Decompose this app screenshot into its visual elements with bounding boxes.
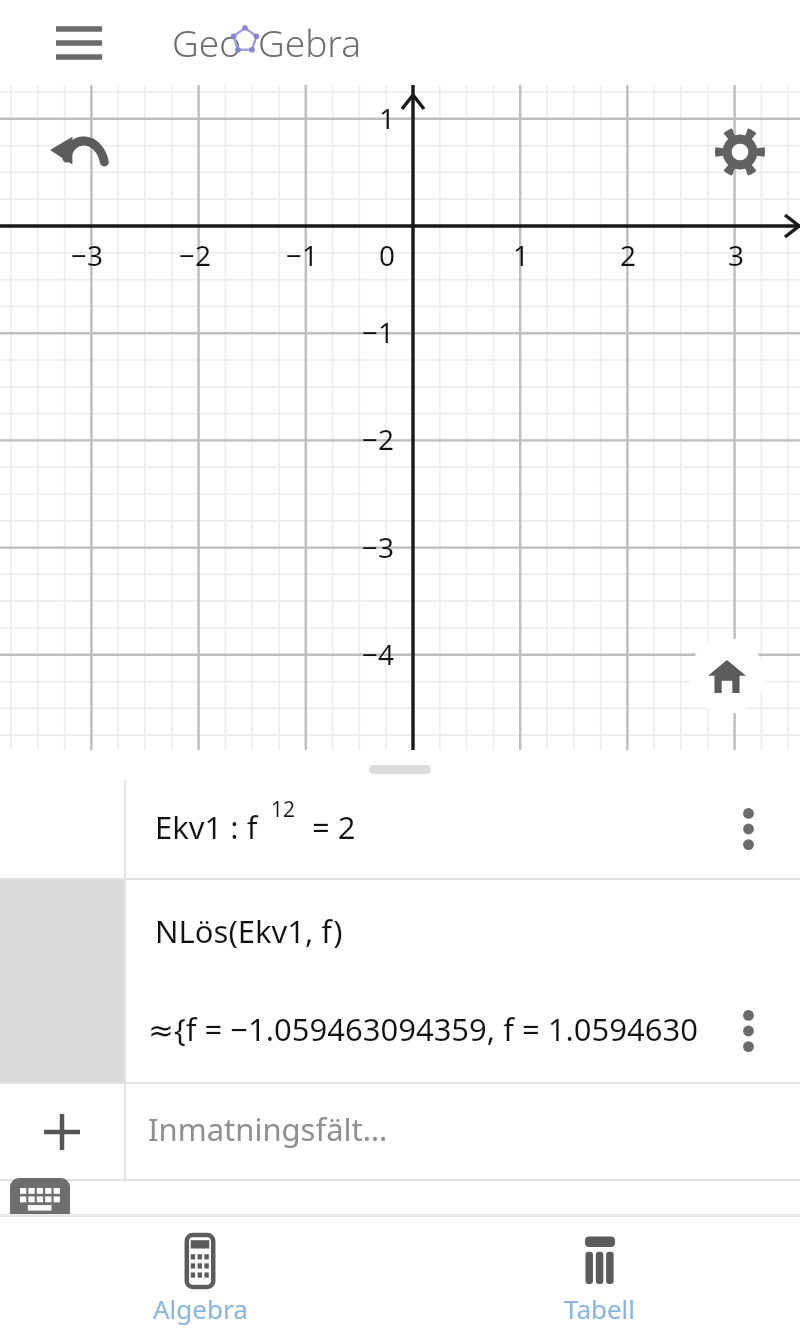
staticText: 1 — [379, 99, 396, 137]
button[interactable]: Add input — [0, 1084, 124, 1179]
staticText: = 2 — [312, 806, 356, 848]
staticText: Tabell — [564, 1291, 636, 1326]
button[interactable]: More options — [725, 800, 771, 858]
staticText: Ekv1 : f — [155, 806, 258, 848]
button[interactable]: Menu — [48, 12, 110, 74]
staticText: 1 — [513, 236, 530, 274]
button[interactable]: More options — [725, 1002, 771, 1060]
staticText: ≈{f = −1.059463094359, f = 1.0594630 — [148, 1008, 698, 1050]
staticText: −3 — [71, 236, 104, 274]
staticText: −2 — [362, 420, 395, 458]
staticText: 2 — [620, 236, 637, 274]
button[interactable]: Add input — [0, 1084, 800, 1179]
staticText: −2 — [179, 236, 212, 274]
button[interactable]: Tabell — [400, 1217, 800, 1339]
staticText: 0 — [379, 236, 396, 274]
staticText: NLös(Ekv1, f) — [155, 910, 343, 952]
staticText: Geo — [172, 17, 242, 67]
staticText: 12 — [271, 795, 296, 824]
staticText: Algebra — [153, 1291, 248, 1326]
staticText: Inmatningsfält… — [148, 1108, 388, 1150]
staticText: −1 — [286, 236, 319, 274]
button[interactable]: Algebra — [0, 1217, 400, 1339]
staticText: 3 — [728, 236, 745, 274]
staticText: −1 — [362, 313, 395, 351]
button[interactable]: NLös(Ekv1, f) — [0, 880, 800, 1082]
staticText: −4 — [362, 635, 395, 673]
button[interactable]: Ekv1 : f — [0, 780, 800, 878]
button[interactable]: Home — [689, 638, 765, 714]
staticText: −3 — [362, 528, 395, 566]
button[interactable]: Settings — [709, 121, 771, 183]
staticText: Gebra — [258, 17, 362, 67]
button[interactable]: Keyboard — [10, 1178, 70, 1224]
button[interactable]: Undo — [47, 119, 109, 181]
